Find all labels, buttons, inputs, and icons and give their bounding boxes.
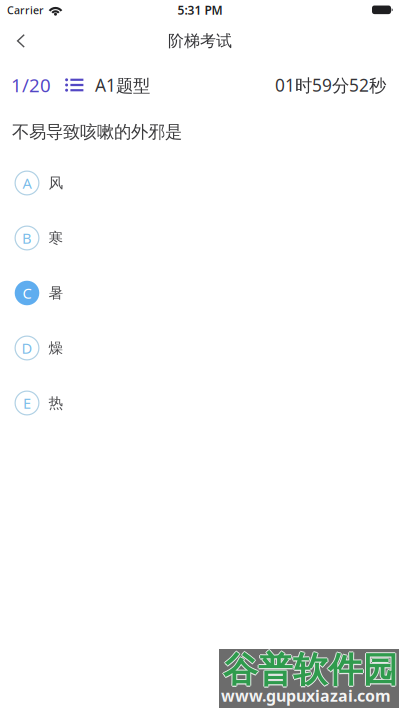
staticText: 风 [48, 174, 63, 192]
staticText: 燥 [48, 339, 63, 357]
button[interactable]: C [0, 271, 400, 315]
button[interactable]: A [0, 161, 400, 205]
staticText: 谷普软件园 [223, 648, 398, 690]
button[interactable]: D [0, 326, 400, 370]
staticText: 谷普软件园 [224, 649, 399, 691]
button[interactable]: Back [0, 24, 42, 58]
staticText: A1题型 [95, 73, 150, 96]
staticText: D [21, 338, 32, 358]
staticText: 不易导致咳嗽的外邪是 [12, 121, 182, 143]
staticText: 暑 [48, 284, 63, 302]
staticText: C [22, 283, 31, 303]
button[interactable]: E [0, 381, 400, 425]
staticText: 5:31 PM [177, 2, 222, 18]
staticText: 阶梯考试 [168, 31, 232, 51]
staticText: A [22, 173, 31, 193]
staticText: B [22, 228, 32, 248]
staticText: 谷普软件园 [223, 649, 398, 691]
staticText: E [23, 393, 31, 413]
staticText: 谷普软件园 [223, 650, 398, 692]
button[interactable]: B [0, 216, 400, 260]
staticText: www.gupuxiazai.com [221, 685, 391, 706]
button[interactable]: 1/20 [11, 73, 150, 97]
staticText: Carrier [7, 3, 44, 17]
staticText: 01时59分52秒 [275, 73, 386, 96]
staticText: 热 [48, 394, 63, 412]
staticText: 寒 [48, 229, 63, 247]
staticText: 谷普软件园 [222, 649, 397, 691]
staticText: 1/20 [11, 73, 51, 97]
